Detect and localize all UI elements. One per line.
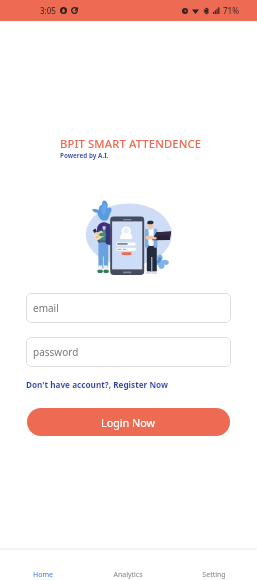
staticText: 71% [223,5,239,16]
staticText: Login Now [101,415,156,430]
staticText: password [33,345,79,359]
staticText: Don't have account?, Register Now [26,379,169,390]
button[interactable]: Setting [171,550,257,580]
staticText: Analytics [113,570,143,580]
staticText: Home [33,570,53,580]
staticText: BPIT SMART ATTENDENCE [60,136,202,151]
button[interactable]: email [26,293,231,323]
staticText: email [33,301,59,315]
staticText: Setting [202,570,226,580]
button[interactable]: Login Now [27,408,230,436]
button[interactable]: password [26,337,231,367]
button[interactable]: Home [0,550,85,580]
button[interactable]: Analytics [85,550,171,580]
button[interactable]: Don't have account?, Register Now [26,379,169,390]
staticText: Powered by A.I. [60,151,109,160]
staticText: 3:05 [40,5,56,16]
